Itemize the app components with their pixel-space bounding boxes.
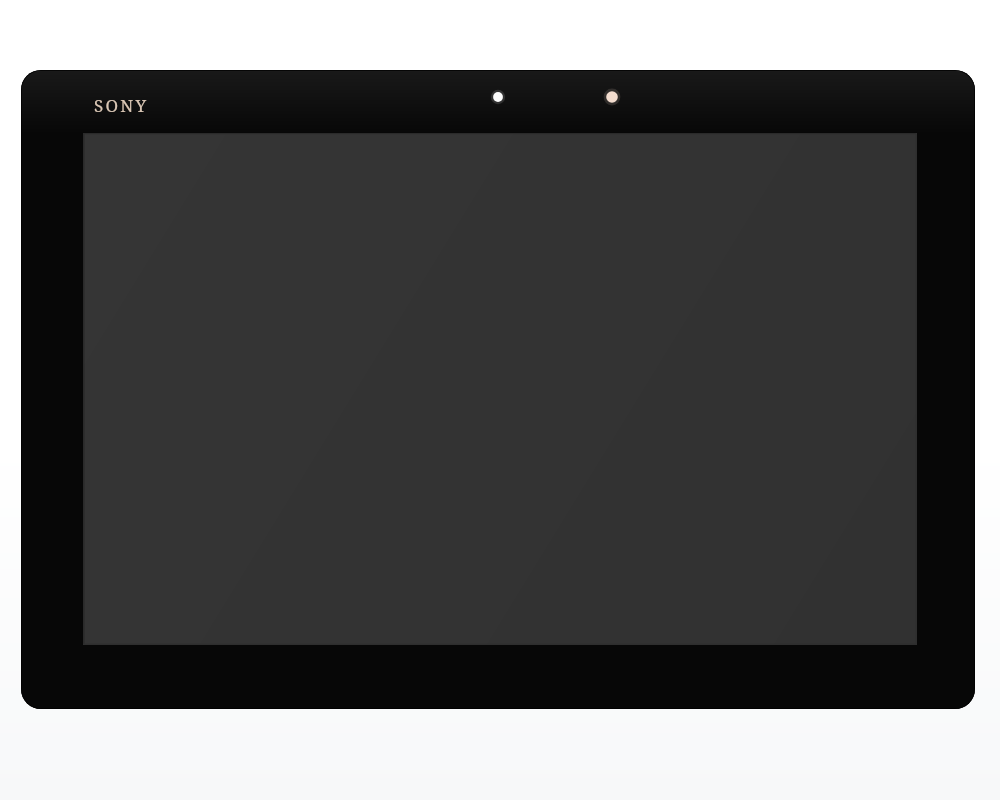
button[interactable]: Sony Xperia tablet display assembly: [21, 70, 975, 709]
button[interactable]: Sony logo: [94, 94, 172, 116]
other: Front camera and light sensor: [471, 84, 641, 110]
staticText: SONY: [94, 94, 149, 116]
